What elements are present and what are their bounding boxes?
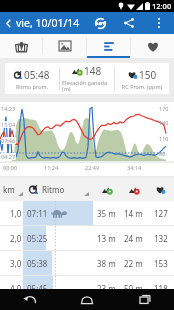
staticText: 3,0 bbox=[10, 258, 22, 269]
staticText: 34:14 bbox=[127, 164, 142, 171]
staticText: vie, 10/01/14 bbox=[16, 16, 80, 30]
staticText: 38 m bbox=[97, 258, 116, 269]
button[interactable]: 05:48 bbox=[5, 63, 59, 94]
staticText: 132 bbox=[154, 233, 168, 244]
staticText: 1,0 bbox=[10, 208, 22, 219]
staticText: 05:48 bbox=[24, 68, 50, 82]
button[interactable]: Sync bbox=[87, 12, 114, 34]
staticText: 11:04 bbox=[1, 121, 16, 128]
staticText: 05:38 bbox=[27, 258, 48, 269]
button[interactable]: Ritmo bbox=[23, 178, 93, 201]
staticText: 12:00 bbox=[152, 1, 172, 11]
staticText: 00:00 bbox=[3, 164, 18, 171]
staticText: 07:46 bbox=[1, 137, 16, 144]
staticText: Ritmo bbox=[42, 184, 65, 195]
button[interactable]: Map bbox=[0, 34, 42, 58]
button[interactable]: 3,0 bbox=[0, 251, 174, 275]
staticText: 150 bbox=[139, 68, 157, 82]
button[interactable]: Photos bbox=[43, 34, 86, 58]
staticText: 05:25 bbox=[27, 233, 48, 244]
staticText: 80 bbox=[159, 150, 166, 157]
staticText: 153 bbox=[154, 258, 168, 269]
staticText: Ritmo prom. bbox=[7, 83, 57, 90]
staticText: 13 m bbox=[97, 233, 116, 244]
staticText: 24 m bbox=[124, 233, 143, 244]
staticText: 05:45 bbox=[27, 283, 48, 294]
button[interactable]: km bbox=[0, 178, 23, 201]
staticText: 07:11 bbox=[27, 208, 48, 219]
button[interactable]: More options bbox=[143, 12, 174, 34]
staticText: 127 bbox=[154, 208, 168, 219]
staticText: 148 bbox=[84, 64, 102, 78]
button[interactable]: 2,0 bbox=[0, 226, 174, 250]
button[interactable]: Back bbox=[0, 289, 58, 310]
button[interactable]: 1,0 bbox=[0, 201, 174, 225]
staticText: 4,0 bbox=[10, 283, 22, 294]
staticText: 118 bbox=[154, 283, 168, 294]
button[interactable]: 150 bbox=[115, 63, 169, 94]
button[interactable]: Share bbox=[114, 12, 143, 34]
staticText: 04:27 bbox=[1, 153, 16, 160]
button[interactable]: Elevation gain bbox=[93, 178, 120, 201]
button[interactable]: Back bbox=[0, 12, 16, 34]
staticText: 23 m bbox=[97, 283, 116, 294]
staticText: 50 m bbox=[124, 283, 143, 294]
staticText: 22 m bbox=[124, 258, 143, 269]
staticText: 170 bbox=[159, 105, 169, 112]
staticText: 35 m bbox=[97, 208, 116, 219]
button[interactable]: Favorites bbox=[131, 34, 174, 58]
staticText: 110 bbox=[159, 135, 169, 142]
button[interactable]: Statistics bbox=[87, 34, 130, 58]
staticText: 22:49 bbox=[85, 164, 100, 171]
staticText: 2,0 bbox=[10, 233, 22, 244]
button[interactable]: Elevation loss bbox=[120, 178, 147, 201]
staticText: Elevación ganada (m) bbox=[62, 79, 107, 93]
staticText: 14:23 bbox=[1, 105, 16, 112]
staticText: 14 m bbox=[124, 208, 143, 219]
button[interactable]: Recent apps bbox=[116, 289, 174, 310]
button[interactable]: Home bbox=[58, 289, 116, 310]
staticText: km bbox=[3, 184, 15, 195]
button[interactable]: Heart rate bbox=[147, 178, 174, 201]
button[interactable]: 4,0 bbox=[0, 276, 174, 300]
staticText: 140 bbox=[159, 119, 169, 126]
button[interactable]: 148 bbox=[60, 63, 114, 94]
staticText: 11:24 bbox=[44, 164, 59, 171]
staticText: RC Prom. (ppm) bbox=[117, 83, 167, 90]
